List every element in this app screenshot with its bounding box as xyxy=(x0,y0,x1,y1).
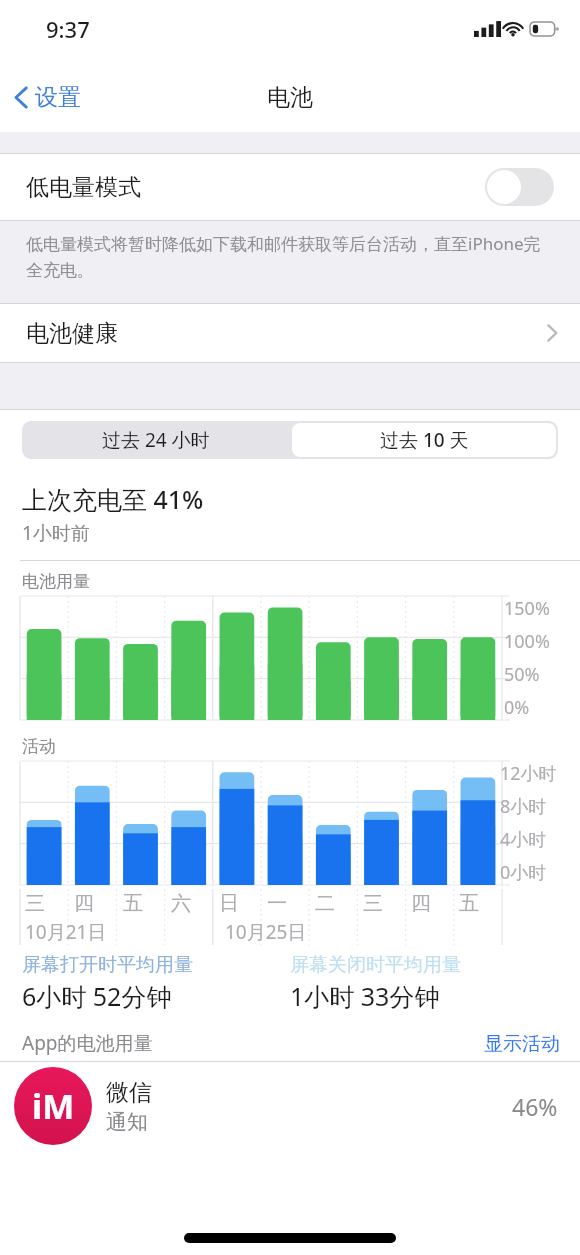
staticText: 一 xyxy=(267,891,287,916)
staticText: 50% xyxy=(504,662,540,687)
staticText: 46% xyxy=(512,1091,558,1122)
button[interactable]: 电池健康 xyxy=(0,304,580,362)
staticText: App的电池用量 xyxy=(22,1030,153,1056)
other: Back xyxy=(14,85,29,110)
staticText: 四 xyxy=(74,891,94,916)
staticText: 1小时前 xyxy=(22,520,90,546)
staticText: 显示活动 xyxy=(484,1032,560,1056)
staticText: 12小时 xyxy=(500,761,557,786)
staticText: 6小时 52分钟 xyxy=(22,979,172,1013)
staticText: iM xyxy=(32,1083,75,1129)
staticText: 0% xyxy=(504,695,530,720)
staticText: 电池 xyxy=(267,83,313,112)
staticText: 电池健康 xyxy=(26,319,546,348)
staticText: 五 xyxy=(123,891,143,916)
staticText: 过去 10 天 xyxy=(380,427,469,453)
staticText: 1小时 33分钟 xyxy=(290,979,440,1013)
staticText: 屏幕打开时平均用量 xyxy=(22,953,193,977)
staticText: 上次充电至 41% xyxy=(22,482,204,516)
staticText: 10月21日 xyxy=(25,919,107,945)
staticText: 六 xyxy=(171,891,191,916)
staticText: 9:37 xyxy=(46,14,90,44)
staticText: 设置 xyxy=(35,83,81,112)
staticText: 屏幕关闭时平均用量 xyxy=(290,953,461,977)
button[interactable]: Back xyxy=(0,77,93,118)
staticText: 电池用量 xyxy=(22,571,90,592)
staticText: 低电量模式 xyxy=(26,173,485,202)
staticText: 8小时 xyxy=(500,794,547,819)
staticText: 4小时 xyxy=(500,827,547,852)
button[interactable]: iM xyxy=(0,1062,580,1150)
staticText: 活动 xyxy=(22,736,56,757)
staticText: 100% xyxy=(504,629,550,654)
button[interactable]: 低电量模式开关 xyxy=(485,168,554,206)
button[interactable]: 过去 10 天 xyxy=(292,423,556,457)
staticText: 0小时 xyxy=(500,860,547,885)
button[interactable]: 过去 24 小时 xyxy=(22,421,290,459)
staticText: 10月25日 xyxy=(225,919,307,945)
staticText: 四 xyxy=(411,891,431,916)
staticText: 三 xyxy=(25,891,45,916)
button[interactable]: 屏幕打开时平均用量 xyxy=(22,953,290,1013)
staticText: 150% xyxy=(504,596,550,621)
staticText: 日 xyxy=(219,891,239,916)
staticText: 二 xyxy=(315,891,335,916)
staticText: 低电量模式将暂时降低如下载和邮件获取等后台活动，直至iPhone完全充电。 xyxy=(26,232,546,281)
staticText: 微信 xyxy=(106,1078,152,1107)
button[interactable]: 显示活动 xyxy=(474,1028,580,1061)
staticText: 三 xyxy=(363,891,383,916)
button[interactable]: 屏幕关闭时平均用量 xyxy=(290,953,580,1013)
staticText: 过去 24 小时 xyxy=(102,427,210,453)
staticText: 五 xyxy=(459,891,479,916)
staticText: 通知 xyxy=(106,1109,148,1135)
button[interactable]: 低电量模式 xyxy=(0,154,580,220)
